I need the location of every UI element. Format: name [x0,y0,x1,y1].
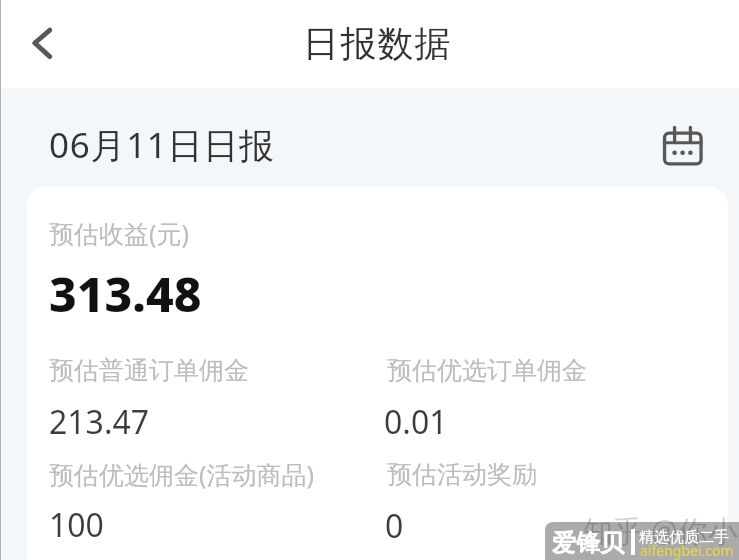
staticText: 100 [49,503,104,547]
staticText: 日报数据 [303,21,452,66]
staticText: aifengbei.com [640,541,734,560]
staticText: 313.48 [49,261,202,326]
staticText: 06月11日日报 [49,121,275,169]
button[interactable]: Select date [652,115,712,175]
staticText: 爱锋贝 [552,528,624,558]
staticText: 预估优选佣金(活动商品) [49,457,315,491]
staticText: 0.01 [384,400,448,444]
staticText: 精选优质二手 [639,528,729,547]
staticText: 213.47 [49,400,150,444]
staticText: 预估优选订单佣金 [387,355,587,386]
staticText: 0 [385,504,404,548]
staticText: 预估收益(元) [49,216,190,250]
staticText: 预估普通订单佣金 [49,355,249,386]
staticText: 预估活动奖励 [387,459,537,490]
staticText: 知乎 @你小嘿 [583,510,739,551]
button[interactable]: Back [15,15,71,71]
